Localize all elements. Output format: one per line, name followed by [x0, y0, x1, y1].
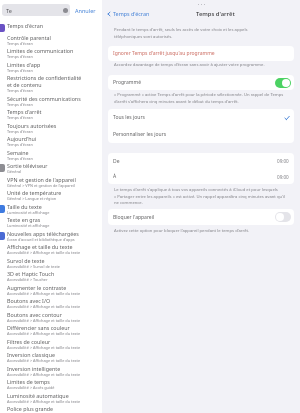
button[interactable]: Semaine [0, 149, 102, 163]
staticText: De [113, 158, 120, 165]
button[interactable]: Te [2, 4, 70, 16]
staticText: Inversion classique [7, 351, 55, 358]
staticText: Accessibilité > Affichage et taille du t… [7, 304, 87, 309]
staticText: 09:00 [277, 174, 289, 180]
staticText: Temps d'écran [7, 156, 87, 161]
button[interactable]: De [108, 153, 294, 169]
button[interactable]: Ignorer Temps d'arrêt jusqu'au programme [108, 46, 294, 61]
staticText: Limites de communication [7, 47, 74, 54]
staticText: Semaine [7, 149, 29, 156]
staticText: Taille du texte [7, 203, 42, 210]
button[interactable]: Personnaliser les jours [108, 126, 294, 143]
button[interactable]: Temps d'écran [106, 10, 150, 17]
staticText: Général > VPN et gestion de l'appareil [7, 183, 87, 188]
button[interactable]: Boutons avec contour [0, 311, 102, 325]
staticText: 09:00 [277, 158, 289, 164]
staticText: Sortie téléviseur [7, 162, 48, 169]
staticText: Accordez davantage de temps d'écran sans… [114, 62, 288, 68]
staticText: Tous les jours [113, 114, 145, 121]
staticText: Boutons avec I/O [7, 297, 51, 304]
staticText: Accessibilité > Affichage et taille du t… [7, 345, 87, 350]
button[interactable]: VPN et gestion de l'appareil [0, 176, 102, 190]
staticText: Différencier sans couleur [7, 324, 70, 331]
button[interactable]: Contrôle parental [0, 34, 102, 48]
button[interactable]: À [108, 169, 294, 184]
button[interactable]: Sortie téléviseur [0, 162, 102, 176]
button[interactable]: Tous les jours [108, 109, 294, 126]
button[interactable]: Texte en gras [0, 216, 102, 230]
staticText: Écran d'accueil et bibliothèque d'apps [7, 237, 87, 242]
staticText: Limites de temps [7, 378, 50, 385]
button[interactable]: Aujourd'hui [0, 135, 102, 149]
staticText: Accessibilité > Affichage et taille du t… [7, 318, 87, 323]
staticText: Temps d'écran [7, 41, 87, 46]
button[interactable]: Taille du texte [0, 203, 102, 217]
staticText: Bloquer l'appareil [113, 214, 155, 221]
staticText: Temps d'écran [7, 102, 87, 107]
staticText: Te [6, 7, 12, 14]
button[interactable]: 3D et Haptic Touch [0, 270, 102, 284]
button[interactable]: Inversion intelligente [0, 365, 102, 379]
staticText: Annuler [75, 7, 96, 14]
button[interactable]: Nouvelles apps téléchargées [0, 230, 102, 244]
button[interactable]: Boutons avec I/O [0, 297, 102, 311]
button[interactable]: Luminosité automatique [0, 392, 102, 406]
button[interactable]: Toujours autorisées [0, 122, 102, 136]
button[interactable]: Sécurité des communications [0, 95, 102, 109]
staticText: Police plus grande [7, 405, 54, 412]
staticText: Luminosité et affichage [7, 210, 87, 215]
staticText: Filtres de couleur [7, 338, 51, 345]
staticText: Accessibilité > Affichage et taille du t… [7, 399, 87, 404]
staticText: Inversion intelligente [7, 365, 61, 372]
button[interactable]: Limites de communication [0, 47, 102, 61]
button[interactable]: Unité de température [0, 189, 102, 203]
staticText: Luminosité automatique [7, 392, 69, 399]
staticText: Contrôle parental [7, 34, 51, 41]
button[interactable]: Inversion classique [0, 351, 102, 365]
button[interactable]: Limites d'app [0, 61, 102, 75]
staticText: Activez cette option pour bloquer l'appa… [114, 228, 288, 234]
staticText: Affichage et taille du texte [7, 243, 73, 250]
staticText: Pendant le temps d'arrêt, seuls les accè… [114, 27, 272, 39]
staticText: Ignorer Temps d'arrêt jusqu'au programme [113, 50, 215, 57]
staticText: Temps d'écran [7, 88, 87, 93]
button[interactable]: Filtres de couleur [0, 338, 102, 352]
staticText: Survol de texte [7, 257, 45, 264]
staticText: Accessibilité > Affichage et taille du t… [7, 372, 87, 377]
button[interactable]: Augmenter le contraste [0, 284, 102, 298]
button[interactable]: Annuler [75, 7, 96, 14]
staticText: Temps d'écran [7, 68, 87, 73]
staticText: Unité de température [7, 189, 62, 196]
staticText: Restrictions de confidentialité et de co… [7, 74, 87, 88]
button[interactable]: Différencier sans couleur [0, 324, 102, 338]
button[interactable]: Temps d'écran [0, 22, 102, 33]
staticText: Limites d'app [7, 61, 41, 68]
staticText: Boutons avec contour [7, 311, 62, 318]
button[interactable]: Programmé [108, 75, 294, 90]
staticText: Programmé [113, 79, 142, 86]
staticText: Accessibilité > Affichage et taille du t… [7, 331, 87, 336]
button[interactable]: Restrictions de confidentialité et de co… [0, 74, 102, 95]
button[interactable]: Temps d'arrêt [0, 108, 102, 122]
staticText: Texte en gras [7, 216, 41, 223]
button[interactable]: On [275, 78, 291, 88]
button[interactable]: Bloquer l'appareil [108, 209, 294, 225]
button[interactable]: Affichage et taille du texte [0, 243, 102, 257]
button[interactable]: Off [275, 212, 291, 222]
button[interactable]: Police plus grande [0, 405, 102, 413]
staticText: Général > Langue et région [7, 196, 87, 201]
staticText: Accessibilité > Accès guidé [7, 385, 87, 390]
staticText: Luminosité et affichage [7, 223, 87, 228]
staticText: Temps d'écran [7, 129, 87, 134]
staticText: Le temps d'arrêt s'applique à tous vos a… [114, 187, 288, 205]
staticText: Accessibilité > Survol de texte [7, 264, 87, 269]
staticText: Accessibilité > Affichage et taille du t… [7, 291, 87, 296]
staticText: À [113, 173, 117, 180]
staticText: Temps d'écran [7, 22, 43, 29]
staticText: Augmenter le contraste [7, 284, 67, 291]
button[interactable]: Limites de temps [0, 378, 102, 392]
button[interactable]: Survol de texte [0, 257, 102, 271]
staticText: Temps d'arrêt [196, 10, 235, 18]
staticText: Temps d'écran [7, 142, 87, 147]
